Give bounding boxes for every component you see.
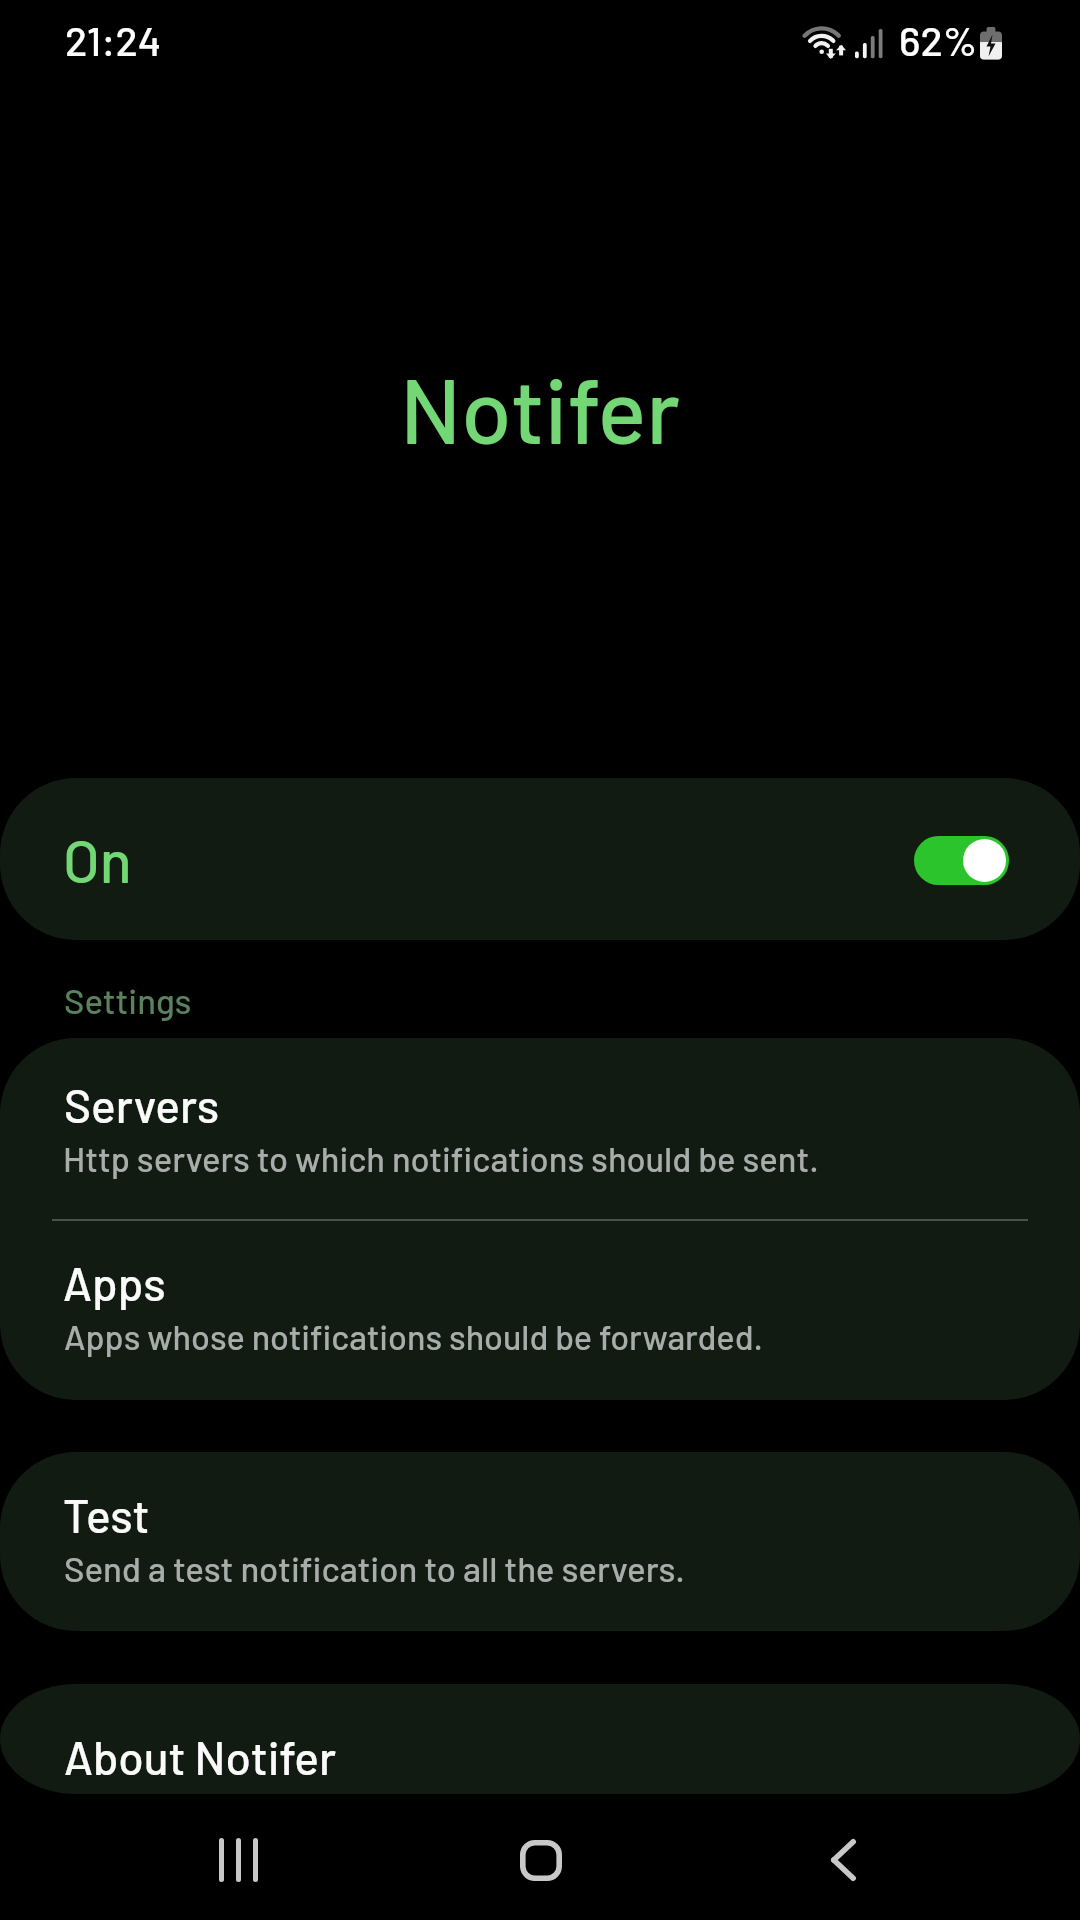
staticText: Apps <box>63 1255 166 1310</box>
staticText: On <box>63 824 132 895</box>
staticText: Notifer <box>0 353 1080 462</box>
staticText: 21:24 <box>65 15 162 64</box>
staticText: Servers <box>64 1077 220 1132</box>
staticText: About Notifer <box>64 1729 337 1784</box>
staticText: Settings <box>64 979 192 1021</box>
button[interactable]: Back <box>783 1800 903 1920</box>
button[interactable]: Servers <box>0 1038 1080 1220</box>
button[interactable]: Apps <box>0 1221 1080 1400</box>
staticText: Test <box>63 1487 150 1542</box>
button[interactable]: About Notifer <box>0 1684 1080 1794</box>
staticText: Http servers to which notifications shou… <box>63 1137 819 1178</box>
staticText: 62% <box>899 15 978 64</box>
staticText: Apps whose notifications should be forwa… <box>64 1316 763 1357</box>
button[interactable]: On <box>0 778 1080 940</box>
button[interactable]: Test <box>0 1452 1080 1631</box>
button[interactable]: Recent apps <box>181 1800 301 1920</box>
button[interactable]: Home <box>481 1800 601 1920</box>
staticText: Send a test notification to all the serv… <box>64 1547 685 1589</box>
